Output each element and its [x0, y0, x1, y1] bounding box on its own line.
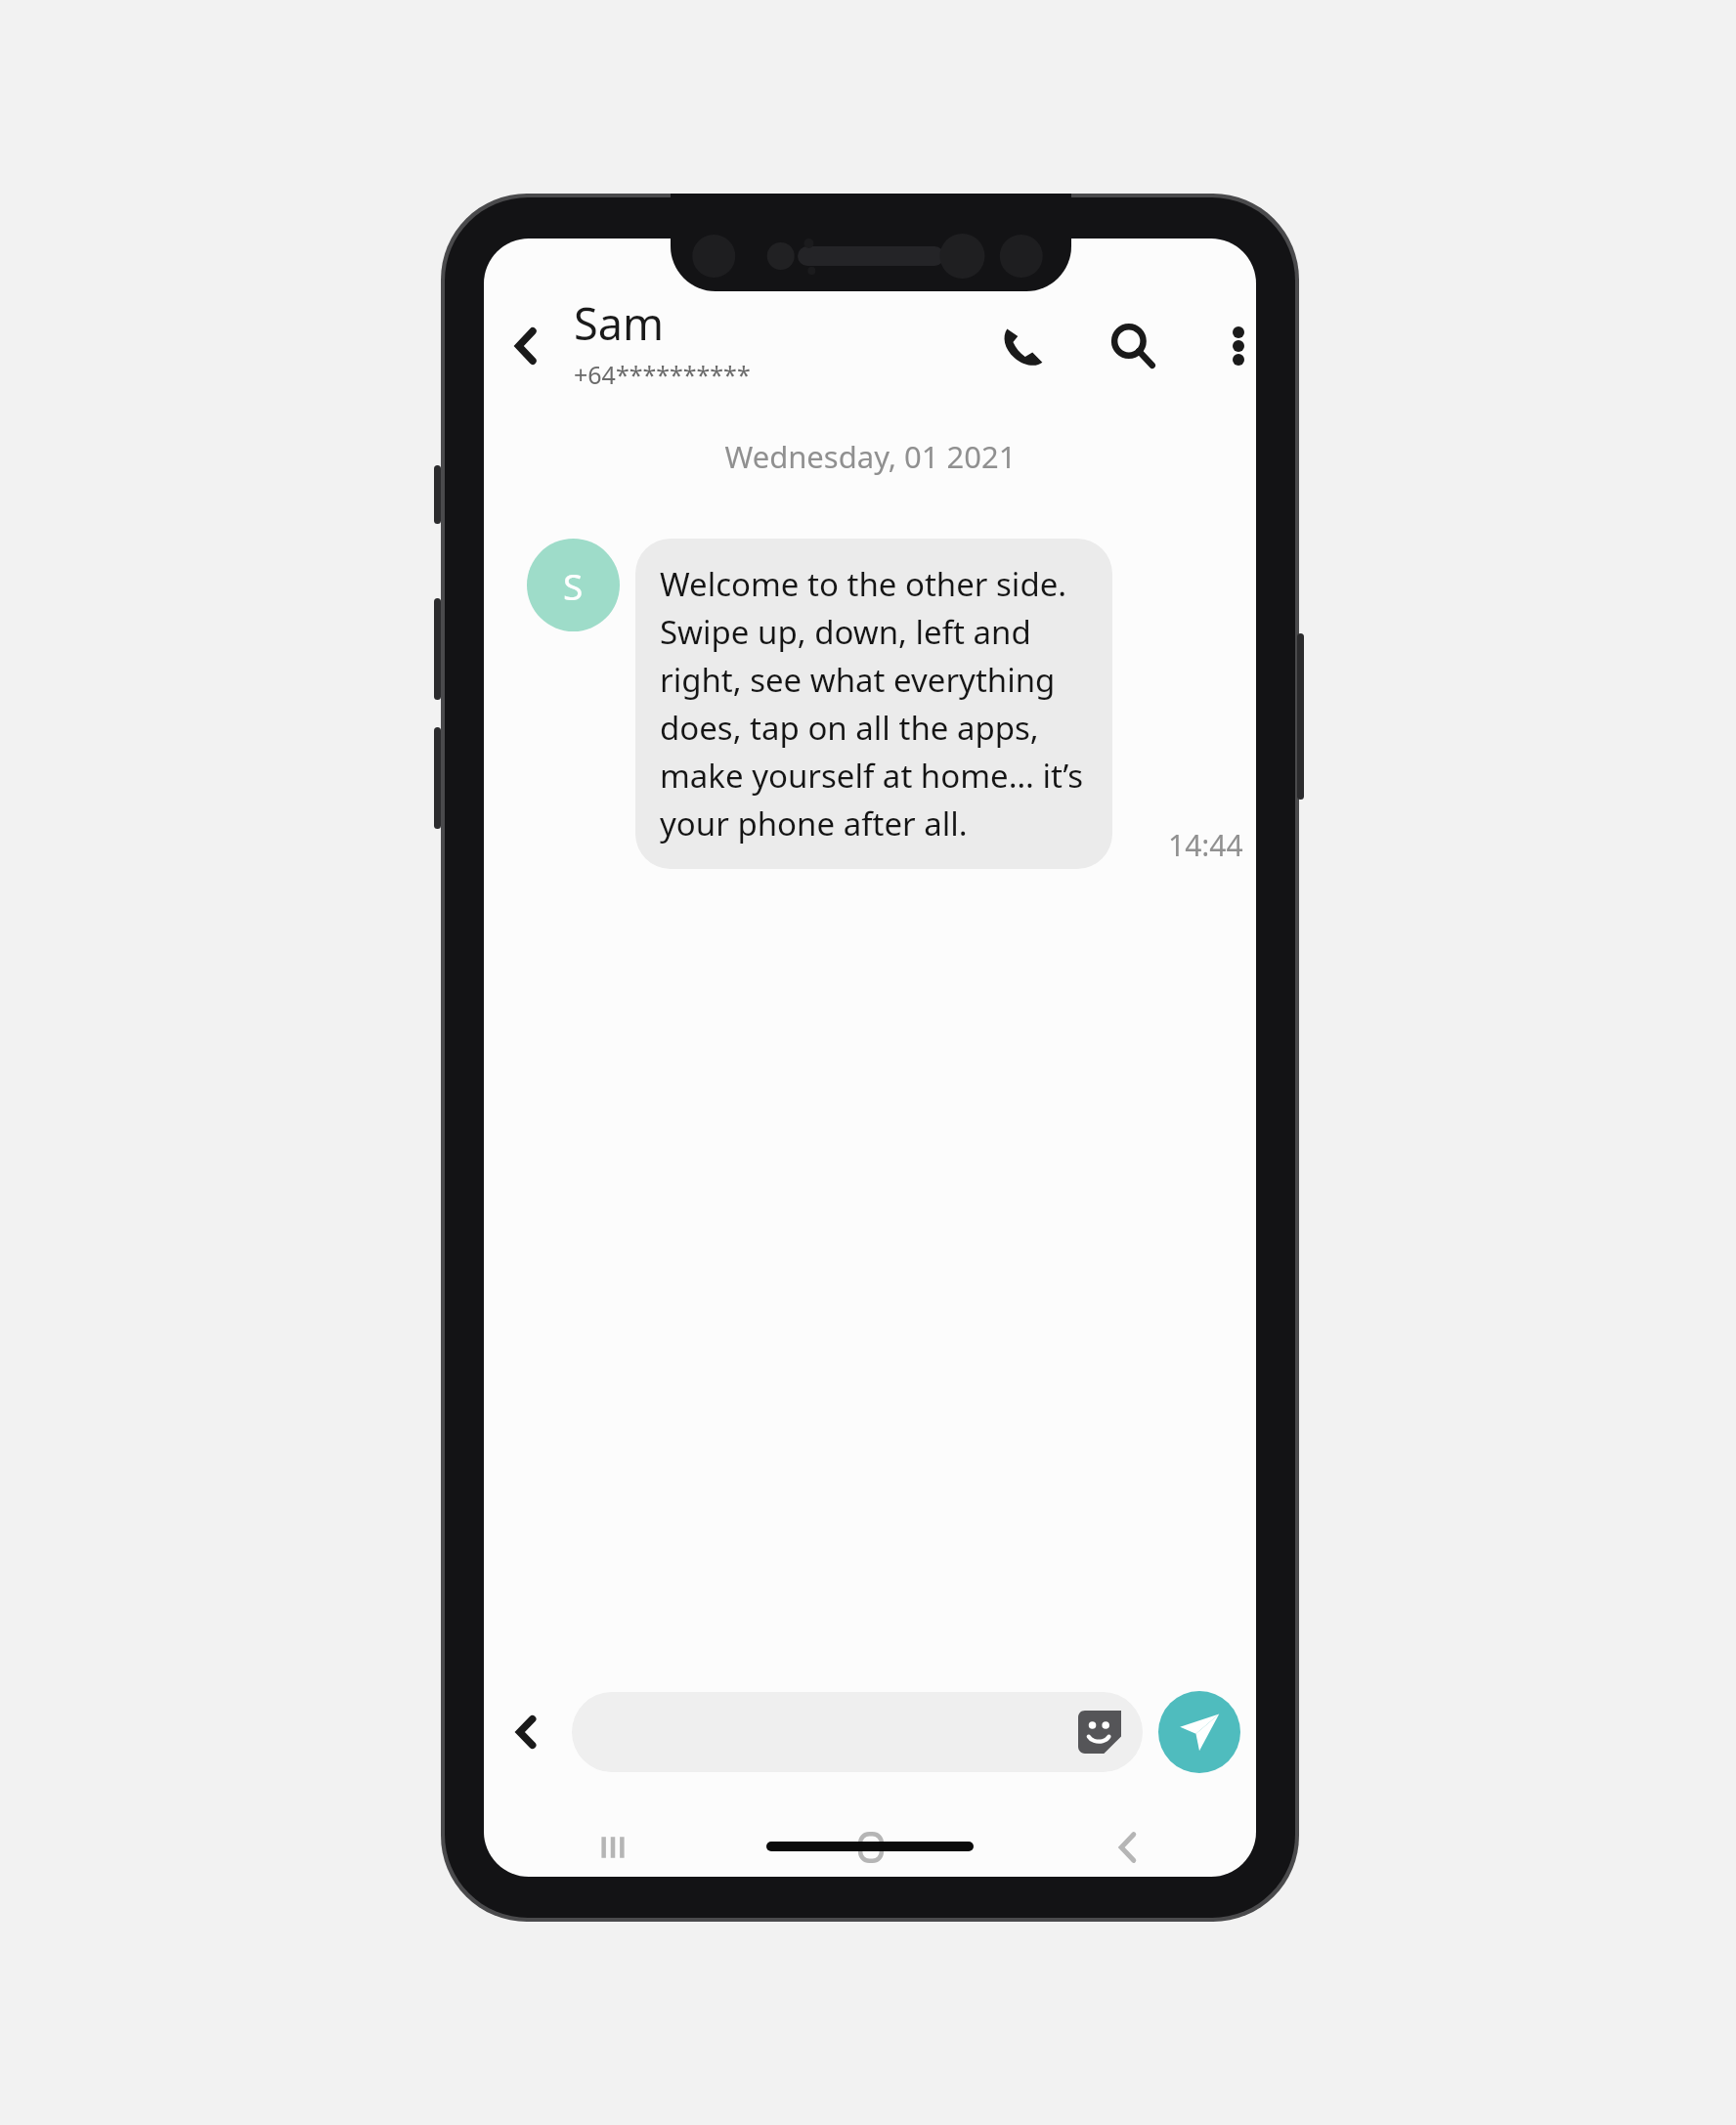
button[interactable]: Search [1094, 307, 1172, 385]
staticText: S [563, 561, 584, 610]
button[interactable]: Stickers [1072, 1705, 1127, 1759]
button[interactable]: Home [742, 1797, 999, 1877]
button[interactable]: S [527, 539, 620, 631]
button[interactable]: More options [1199, 307, 1256, 385]
button[interactable]: Stickers [572, 1692, 1143, 1772]
staticText: 14:44 [1168, 825, 1243, 865]
button[interactable]: Call [984, 307, 1063, 385]
button[interactable]: Send [1158, 1691, 1240, 1773]
staticText: +64********** [574, 358, 751, 391]
staticText: Welcome to the other side. Swipe up, dow… [660, 562, 1088, 846]
button[interactable]: Welcome to the other side. Swipe up, dow… [635, 539, 1112, 869]
button[interactable]: Back [486, 305, 568, 387]
button[interactable]: Recent apps [484, 1797, 742, 1877]
button[interactable]: Back [999, 1797, 1256, 1877]
staticText: Sam [574, 293, 665, 353]
staticText: Wednesday, 01 2021 [724, 436, 1017, 477]
button[interactable]: More actions [490, 1695, 564, 1769]
